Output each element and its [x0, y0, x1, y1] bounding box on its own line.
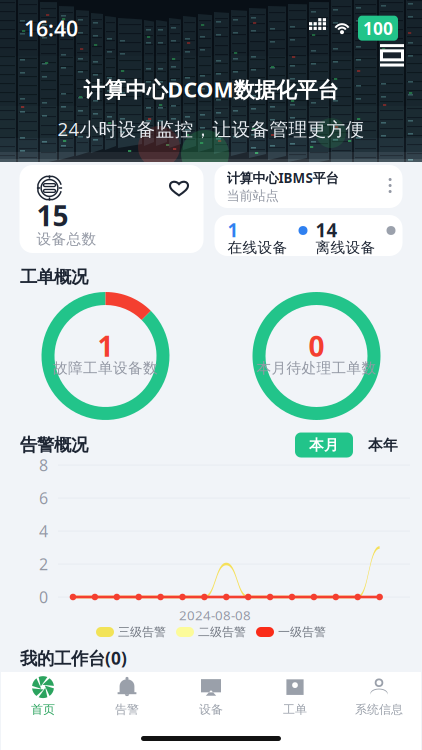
staticText: 计算中心IBMS平台	[226, 169, 338, 187]
staticText: 三级告警	[118, 625, 166, 639]
staticText: 告警概况	[20, 434, 88, 456]
button[interactable]: 告警	[85, 673, 169, 719]
staticText: 二级告警	[198, 625, 246, 639]
staticText: 首页	[31, 702, 55, 717]
staticText: 1	[97, 327, 113, 365]
staticText: 8	[39, 454, 48, 476]
staticText: 系统信息	[355, 702, 403, 717]
button[interactable]: 首页	[1, 673, 85, 719]
button[interactable]: 工单	[253, 673, 337, 719]
staticText: 工单概况	[20, 266, 88, 288]
button[interactable]: 本月	[295, 432, 353, 457]
staticText: 2024-08-08	[179, 606, 251, 624]
staticText: 告警	[115, 702, 139, 717]
button[interactable]: 设备	[169, 673, 253, 719]
staticText: 设备总数	[36, 230, 96, 248]
staticText: 本月待处理工单数	[256, 359, 376, 377]
staticText: 14	[315, 218, 337, 242]
button[interactable]: 一级告警	[256, 623, 326, 641]
staticText: 工单	[283, 702, 307, 717]
button[interactable]: 14	[309, 215, 397, 256]
button[interactable]: 系统信息	[337, 673, 421, 719]
staticText: 6	[39, 487, 48, 509]
staticText: 1	[227, 218, 238, 242]
staticText: 故障工单设备数	[53, 359, 158, 377]
staticText: 4	[39, 520, 48, 542]
button[interactable]: 计算中心IBMS平台	[214, 165, 402, 208]
button[interactable]: 二级告警	[176, 623, 246, 641]
staticText: 15	[36, 197, 68, 234]
staticText: 24小时设备监控，让设备管理更方便	[57, 116, 364, 141]
button[interactable]: 1	[221, 215, 309, 256]
staticText: 计算中心DCOM数据化平台	[83, 75, 338, 103]
staticText: 设备	[199, 702, 223, 717]
staticText: 2	[39, 553, 48, 575]
staticText: 一级告警	[278, 625, 326, 639]
staticText: 本年	[368, 436, 398, 454]
staticText: 100	[363, 17, 393, 40]
staticText: 我的工作台(0)	[20, 646, 127, 669]
staticText: 0	[39, 586, 48, 608]
staticText: 16:40	[24, 14, 78, 42]
button[interactable]: 收藏	[168, 179, 189, 197]
button[interactable]: 三级告警	[96, 623, 166, 641]
staticText: 当前站点	[226, 188, 278, 204]
button[interactable]: 本年	[364, 432, 402, 457]
button[interactable]: 更多	[382, 172, 398, 200]
staticText: 本月	[309, 436, 339, 454]
button[interactable]: 菜单	[380, 44, 422, 67]
button[interactable]: 15	[19, 165, 203, 253]
staticText: 在线设备	[227, 238, 287, 256]
staticText: 离线设备	[315, 238, 375, 256]
staticText: 0	[308, 327, 324, 365]
